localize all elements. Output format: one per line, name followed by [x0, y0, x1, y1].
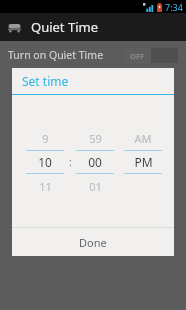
staticText: Done [79, 235, 107, 250]
staticText: 9 [42, 131, 49, 146]
button[interactable]: Quiet Time app icon [5, 18, 23, 36]
staticText: 01 [89, 179, 102, 194]
button[interactable]: Done [12, 228, 174, 256]
button[interactable]: Turn on Quiet Time toggle, off [124, 48, 178, 63]
staticText: 10 [38, 154, 52, 170]
staticText: PM [134, 154, 153, 170]
staticText: 59 [89, 131, 102, 146]
staticText: AM [134, 131, 152, 146]
button[interactable]: Minute [76, 126, 114, 198]
staticText: OFF [130, 51, 145, 61]
button[interactable]: Hour [26, 126, 64, 198]
staticText: : [69, 155, 72, 169]
staticText: 00 [88, 154, 102, 170]
button[interactable]: AM PM [124, 126, 162, 198]
staticText: Set time [22, 73, 69, 89]
staticText: Quiet Time [31, 18, 99, 36]
staticText: 11 [39, 179, 52, 194]
staticText: 7:34 [165, 1, 183, 13]
staticText: Turn on Quiet Time [8, 48, 104, 62]
button[interactable]: Turn on Quiet Time [0, 41, 186, 69]
